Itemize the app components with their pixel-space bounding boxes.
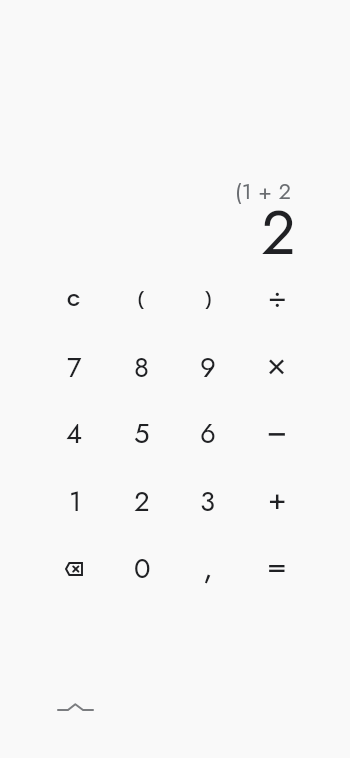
button[interactable]: × — [245, 332, 309, 396]
button[interactable]: 1 — [43, 470, 107, 534]
staticText: − — [266, 404, 288, 456]
button[interactable]: 6 — [176, 402, 240, 466]
staticText: × — [267, 341, 287, 387]
button[interactable]: 3 — [176, 470, 240, 534]
button[interactable]: 8 — [110, 336, 174, 400]
button[interactable]: 4 — [42, 402, 106, 466]
staticText: 8 — [134, 348, 150, 388]
staticText: 3 — [200, 482, 216, 522]
staticText: (1 + 2 — [235, 175, 291, 207]
button[interactable]: ) — [177, 268, 241, 332]
staticText: ) — [205, 290, 213, 311]
button[interactable] — [42, 537, 106, 601]
staticText: = — [267, 542, 287, 588]
staticText: 6 — [200, 414, 216, 454]
staticText: 2 — [134, 482, 150, 522]
button[interactable]: + — [245, 466, 309, 530]
button[interactable]: 9 — [176, 336, 240, 400]
staticText: ( — [137, 290, 145, 311]
staticText: 2 — [261, 189, 296, 277]
staticText: 7 — [67, 348, 82, 388]
button[interactable]: ÷ — [245, 264, 309, 328]
staticText: 0 — [134, 549, 151, 589]
button[interactable]: = — [245, 533, 309, 597]
button[interactable]: 7 — [42, 336, 106, 400]
staticText: + — [268, 477, 287, 520]
button[interactable]: 5 — [110, 402, 174, 466]
button[interactable]: , — [176, 535, 240, 599]
button[interactable]: 0 — [110, 537, 174, 601]
staticText: 4 — [66, 414, 83, 454]
staticText: C — [67, 288, 81, 313]
staticText: 1 — [69, 482, 82, 522]
button[interactable]: ( — [109, 268, 173, 332]
button[interactable] — [50, 692, 102, 720]
button[interactable]: C — [42, 268, 106, 332]
staticText: 9 — [200, 348, 216, 388]
staticText: ÷ — [268, 275, 287, 318]
staticText: , — [203, 544, 213, 590]
button[interactable]: 2 — [110, 470, 174, 534]
staticText: 5 — [134, 414, 150, 454]
button[interactable]: − — [245, 398, 309, 462]
